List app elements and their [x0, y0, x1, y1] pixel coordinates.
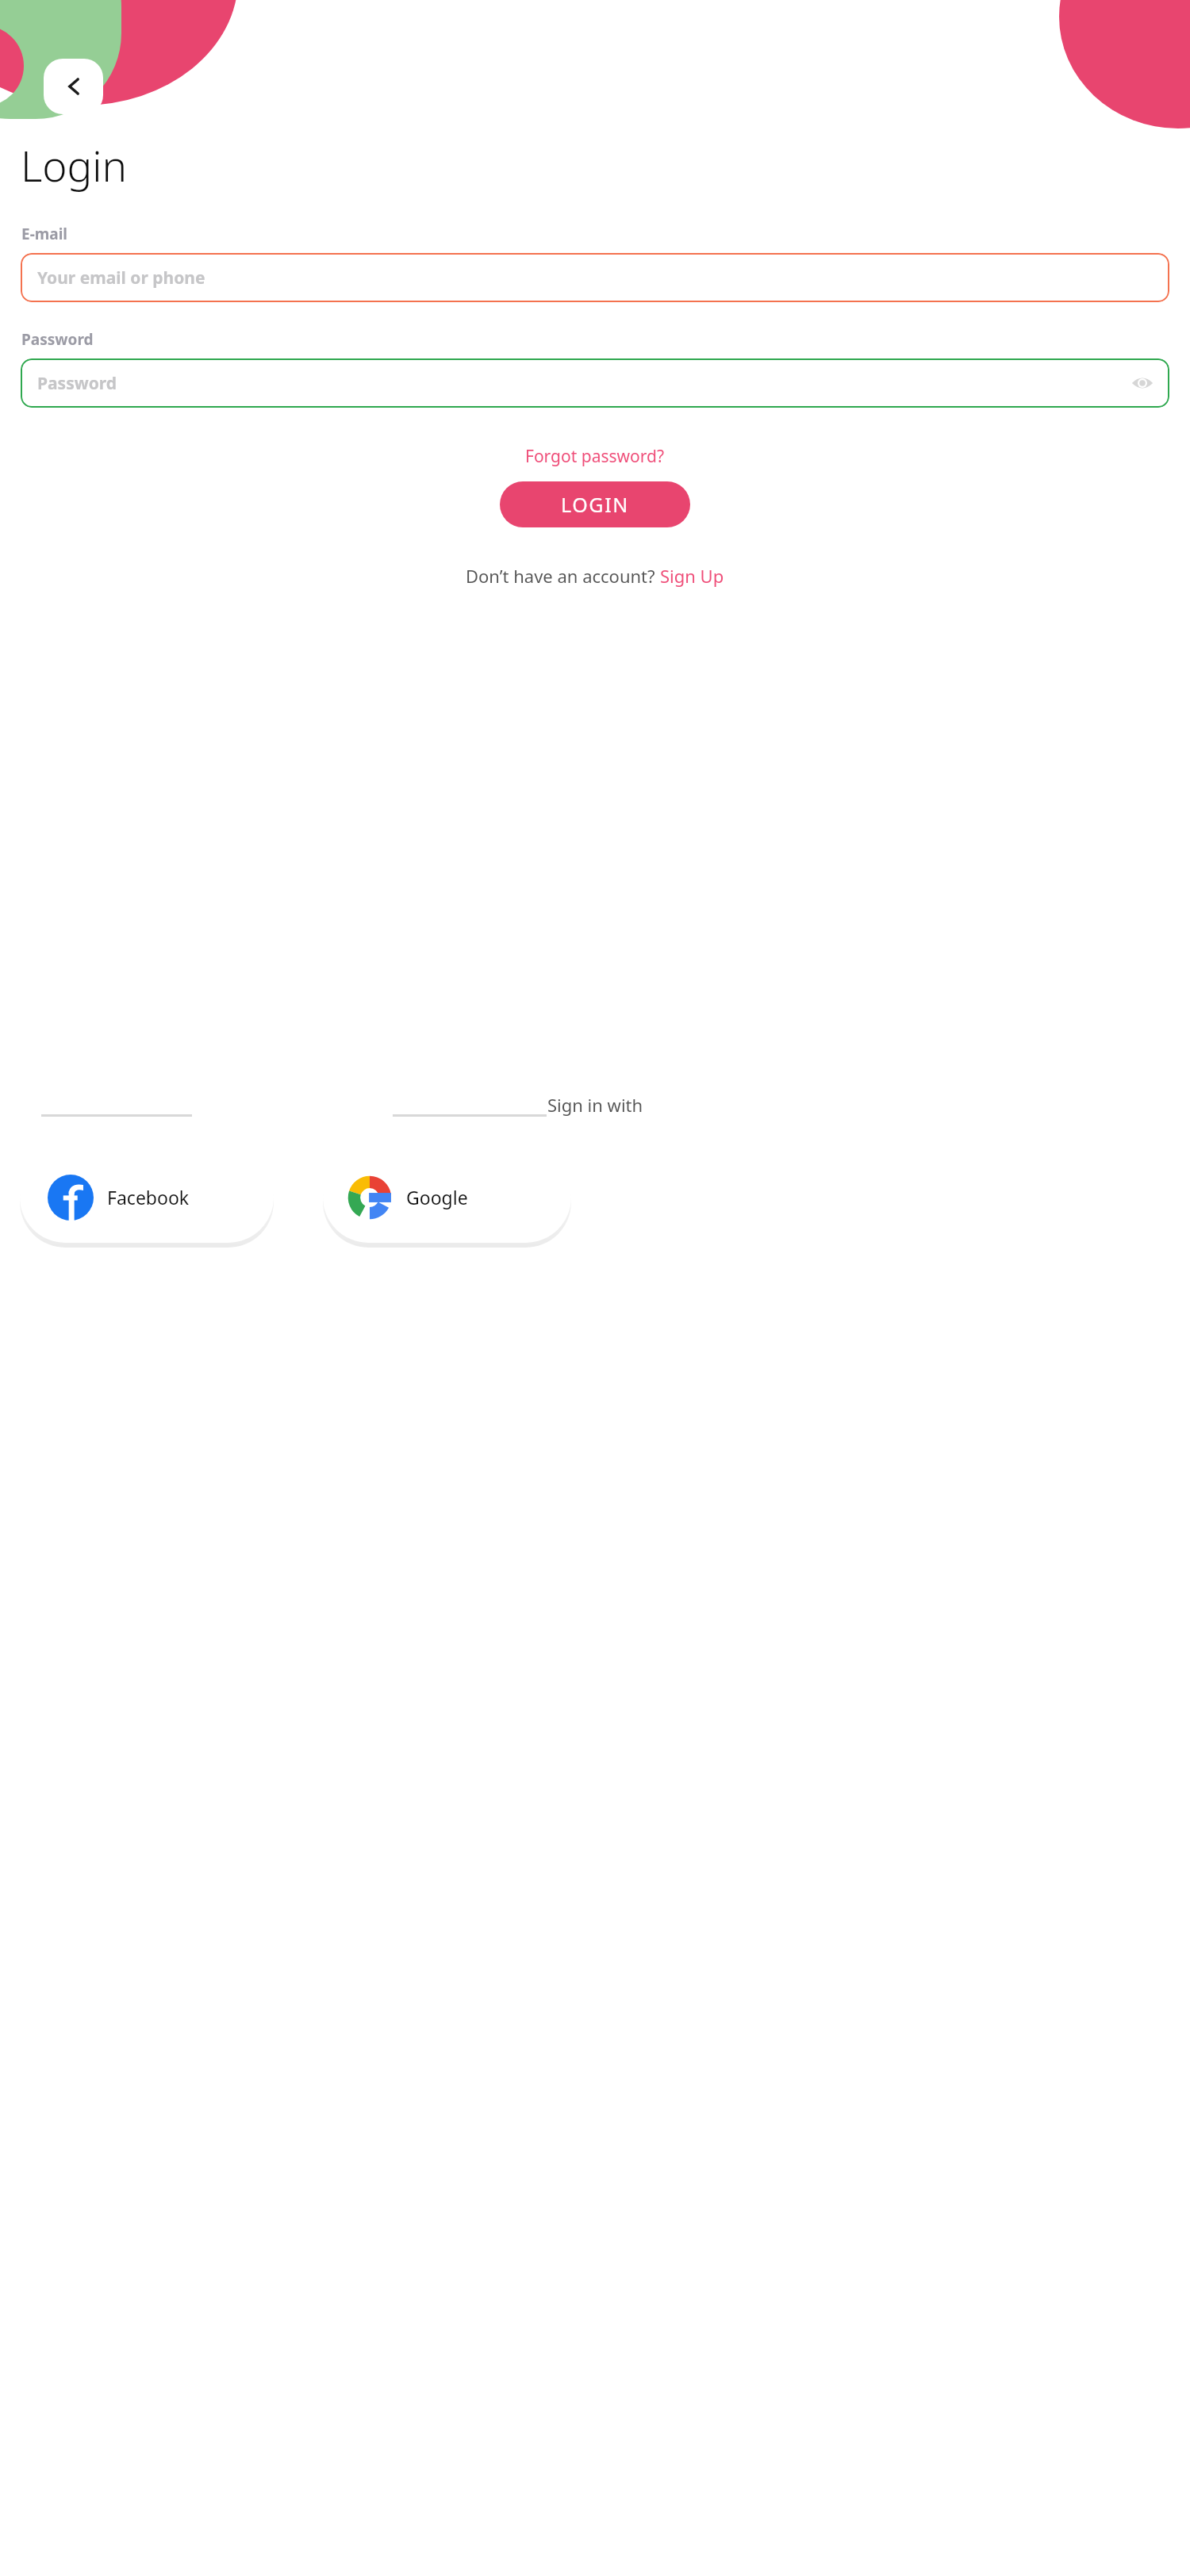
- staticText: LOGIN: [561, 491, 629, 518]
- button[interactable]: Show password: [1127, 367, 1158, 399]
- staticText: Password: [37, 372, 117, 395]
- staticText: E-mail: [21, 224, 67, 244]
- button[interactable]: Google: [323, 1152, 571, 1243]
- staticText: Password: [21, 329, 94, 350]
- staticText: Don’t have an account?: [466, 564, 660, 588]
- staticText: Facebook: [107, 1185, 190, 1209]
- staticText: Sign in with: [547, 1093, 643, 1117]
- button[interactable]: Facebook: [20, 1152, 274, 1243]
- button[interactable]: Sign Up: [660, 564, 724, 588]
- button[interactable]: Forgot password?: [517, 442, 673, 471]
- button[interactable]: Your email or phone: [21, 253, 1169, 302]
- button[interactable]: Back: [44, 59, 103, 114]
- staticText: Your email or phone: [37, 266, 205, 289]
- button[interactable]: Password: [21, 358, 1169, 408]
- button[interactable]: LOGIN: [500, 481, 690, 527]
- staticText: Google: [406, 1185, 468, 1209]
- staticText: Login: [21, 136, 128, 194]
